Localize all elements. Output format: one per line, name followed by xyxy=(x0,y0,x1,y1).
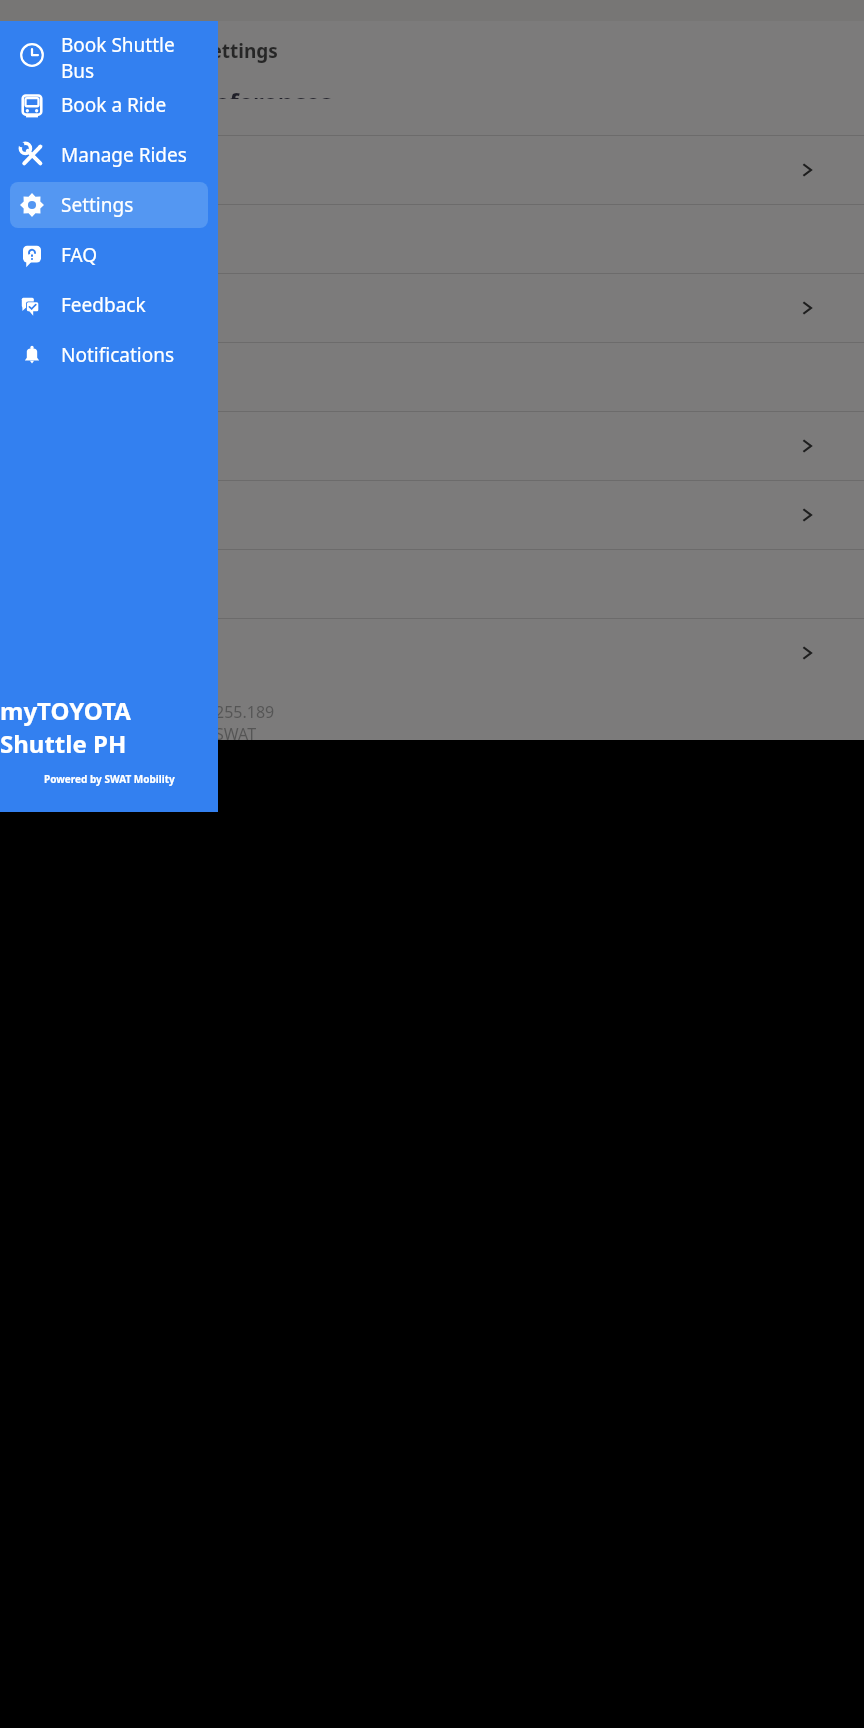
button[interactable]: Manage Rides xyxy=(10,132,208,178)
other: Open xyxy=(798,644,816,662)
staticText: SWAT xyxy=(215,723,257,740)
staticText: FAQ xyxy=(61,242,98,268)
button[interactable]: Feedback xyxy=(10,282,208,328)
staticText: Preferences xyxy=(190,85,333,99)
staticText: Feedback xyxy=(61,292,146,318)
button[interactable]: FAQ xyxy=(10,232,208,278)
staticText: Book a Ride xyxy=(61,92,167,118)
button[interactable]: Settings xyxy=(10,182,208,228)
button[interactable]: Open xyxy=(0,274,864,342)
staticText: Book Shuttle Bus xyxy=(61,32,208,78)
staticText: Settings xyxy=(200,38,278,64)
staticText: Notifications xyxy=(61,342,175,368)
other: Open xyxy=(798,506,816,524)
staticText: myTOYOTA Shuttle PH xyxy=(0,694,218,760)
other: Open xyxy=(798,299,816,317)
button[interactable]: Notifications xyxy=(10,332,208,378)
button[interactable] xyxy=(0,550,864,618)
button[interactable]: Book a Ride xyxy=(10,82,208,128)
staticText: Powered by SWAT Mobility xyxy=(44,772,175,786)
staticText: 255.189 xyxy=(215,701,275,723)
button[interactable]: Open xyxy=(0,619,864,687)
other: Open xyxy=(798,437,816,455)
staticText: Settings xyxy=(61,192,134,218)
button[interactable] xyxy=(0,205,864,273)
button[interactable]: Open xyxy=(0,412,864,480)
staticText: Manage Rides xyxy=(61,142,187,168)
other: Open xyxy=(798,161,816,179)
button[interactable]: Open xyxy=(0,136,864,204)
button[interactable]: Open xyxy=(0,481,864,549)
button[interactable]: Book Shuttle Bus xyxy=(10,32,208,78)
button[interactable] xyxy=(0,343,864,411)
